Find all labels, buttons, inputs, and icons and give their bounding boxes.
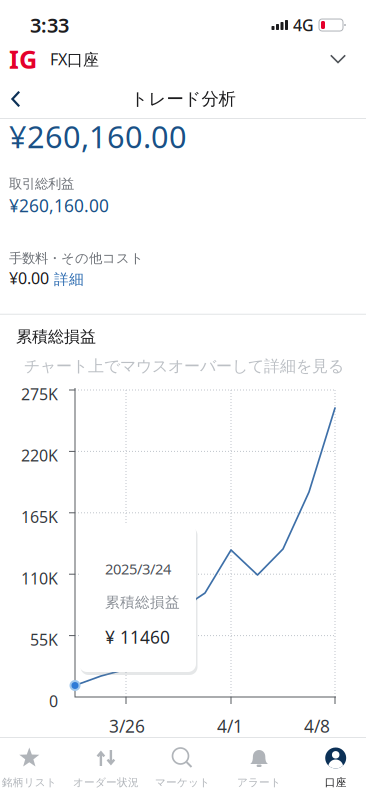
staticText: 275K: [21, 383, 58, 405]
button[interactable]: Switch account: [320, 46, 356, 72]
staticText: トレード分析: [130, 88, 235, 110]
staticText: 165K: [21, 506, 58, 527]
staticText: 3:33: [30, 12, 69, 38]
staticText: 口座: [325, 776, 347, 789]
staticText: 0: [49, 690, 58, 712]
button[interactable]: オーダー状況: [68, 738, 144, 802]
staticText: 3/26: [109, 714, 145, 737]
staticText: 4G: [293, 14, 314, 36]
staticText: 110K: [21, 568, 58, 589]
staticText: マーケット: [155, 776, 210, 789]
staticText: 詳細: [54, 270, 84, 288]
button[interactable]: マーケット: [144, 738, 221, 802]
staticText: 220K: [21, 445, 58, 466]
staticText: 取引総利益: [9, 176, 74, 192]
staticText: チャート上でマウスオーバーして詳細を見る: [24, 356, 344, 376]
staticText: 銘柄リスト: [2, 776, 57, 789]
staticText: オーダー状況: [73, 776, 139, 789]
button[interactable]: 銘柄リスト: [0, 738, 68, 802]
staticText: 55K: [30, 629, 58, 650]
staticText: 手数料・その他コスト: [9, 250, 144, 266]
staticText: FX口座: [50, 48, 99, 70]
staticText: 累積総損益: [105, 593, 180, 611]
button[interactable]: 詳細: [54, 270, 84, 288]
button[interactable]: アラート: [221, 738, 297, 802]
staticText: 4/1: [217, 714, 243, 737]
staticText: 2025/3/24: [105, 559, 171, 578]
button[interactable]: 口座: [297, 738, 366, 802]
staticText: ¥ 11460: [105, 625, 170, 648]
staticText: ¥260,160.00: [9, 116, 187, 157]
staticText: アラート: [237, 776, 281, 789]
staticText: ¥260,160.00: [9, 194, 109, 217]
staticText: 累積総損益: [16, 327, 96, 346]
button[interactable]: Back: [1, 84, 31, 114]
staticText: 4/8: [304, 714, 330, 737]
staticText: IG: [9, 42, 37, 76]
staticText: ¥0.00: [9, 267, 49, 289]
